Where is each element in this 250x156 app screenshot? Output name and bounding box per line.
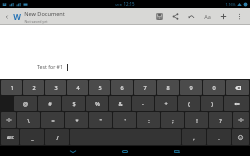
- staticText: ;: [172, 117, 174, 124]
- button[interactable]: *: [65, 112, 88, 128]
- button[interactable]: Back: [3, 13, 11, 21]
- staticText: Aa: [204, 13, 211, 20]
- button[interactable]: &: [109, 96, 131, 111]
- button[interactable]: 9: [180, 80, 202, 95]
- staticText: 12:15: [123, 1, 135, 7]
- staticText: !: [196, 117, 198, 124]
- staticText: 9: [189, 84, 193, 91]
- staticText: (: [188, 100, 190, 107]
- button[interactable]: Text format: [199, 8, 215, 25]
- staticText: ?: [219, 117, 222, 124]
- button[interactable]: Shift: [1, 112, 16, 128]
- button[interactable]: New Document: [24, 10, 151, 24]
- button[interactable]: @: [14, 96, 37, 111]
- button[interactable]: +: [155, 96, 177, 111]
- button[interactable]: ?: [209, 112, 232, 128]
- staticText: ": [99, 117, 102, 124]
- button[interactable]: App icon: [11, 11, 22, 22]
- button[interactable]: Undo: [183, 8, 199, 25]
- button[interactable]: !: [185, 112, 208, 128]
- staticText: /: [56, 134, 59, 141]
- button[interactable]: (: [178, 96, 200, 111]
- button[interactable]: Share: [167, 8, 183, 25]
- staticText: 6: [120, 84, 124, 91]
- staticText: W: [13, 11, 21, 22]
- button[interactable]: :: [137, 112, 160, 128]
- button[interactable]: 1: [1, 80, 22, 95]
- button[interactable]: 2: [23, 80, 44, 95]
- button[interactable]: #: [38, 96, 61, 111]
- button[interactable]: ABC: [1, 129, 19, 145]
- button[interactable]: 0: [203, 80, 225, 95]
- button[interactable]: Recent apps: [170, 146, 184, 156]
- staticText: 4: [76, 84, 80, 91]
- staticText: _: [31, 134, 34, 141]
- staticText: \: [27, 117, 30, 124]
- button[interactable]: Add: [215, 8, 231, 25]
- staticText: 3: [54, 84, 58, 91]
- staticText: 2: [32, 84, 36, 91]
- button[interactable]: \: [17, 112, 40, 128]
- button[interactable]: ": [89, 112, 112, 128]
- staticText: ): [211, 100, 213, 107]
- button[interactable]: ;: [161, 112, 184, 128]
- staticText: Not saved yet: [24, 19, 48, 24]
- button[interactable]: Home: [118, 146, 132, 156]
- button[interactable]: 4: [67, 80, 88, 95]
- staticText: 1: [10, 84, 14, 91]
- button[interactable]: Backspace: [226, 80, 249, 95]
- staticText: @: [23, 100, 28, 107]
- button[interactable]: ': [113, 112, 136, 128]
- staticText: ,: [193, 134, 195, 141]
- button[interactable]: 5: [89, 80, 110, 95]
- button[interactable]: 3: [45, 80, 66, 95]
- staticText: $: [72, 100, 76, 107]
- staticText: %: [95, 100, 100, 107]
- staticText: .: [218, 134, 220, 141]
- staticText: #: [48, 100, 52, 107]
- staticText: ': [124, 117, 126, 124]
- button[interactable]: ,: [182, 129, 206, 145]
- button[interactable]: Emoji: [232, 129, 249, 145]
- staticText: &: [118, 100, 123, 107]
- button[interactable]: Back: [66, 146, 80, 156]
- button[interactable]: =: [41, 112, 64, 128]
- button[interactable]: Shift: [233, 112, 249, 128]
- button[interactable]: More options: [231, 8, 247, 25]
- button[interactable]: .: [207, 129, 231, 145]
- staticText: :: [148, 117, 150, 124]
- staticText: New Document: [24, 10, 65, 18]
- staticText: 0: [212, 84, 216, 91]
- staticText: Test for #1: [37, 63, 63, 70]
- staticText: 7: [143, 84, 147, 91]
- button[interactable]: _: [20, 129, 44, 145]
- button[interactable]: Enter: [224, 96, 249, 111]
- staticText: +: [164, 100, 168, 107]
- button[interactable]: 6: [111, 80, 133, 95]
- button[interactable]: -: [132, 96, 154, 111]
- button[interactable]: 8: [157, 80, 179, 95]
- staticText: ABC: [7, 135, 14, 140]
- staticText: 1.16%: [225, 2, 236, 7]
- button[interactable]: %: [86, 96, 108, 111]
- staticText: *: [75, 117, 79, 124]
- staticText: 8: [166, 84, 170, 91]
- staticText: мсв: [115, 2, 122, 7]
- staticText: =: [51, 117, 55, 124]
- staticText: 5: [98, 84, 102, 91]
- button[interactable]: ): [201, 96, 223, 111]
- button[interactable]: Save: [151, 8, 167, 25]
- staticText: -: [142, 100, 144, 107]
- button[interactable]: 7: [134, 80, 156, 95]
- button[interactable]: $: [62, 96, 85, 111]
- button[interactable]: /: [45, 129, 69, 145]
